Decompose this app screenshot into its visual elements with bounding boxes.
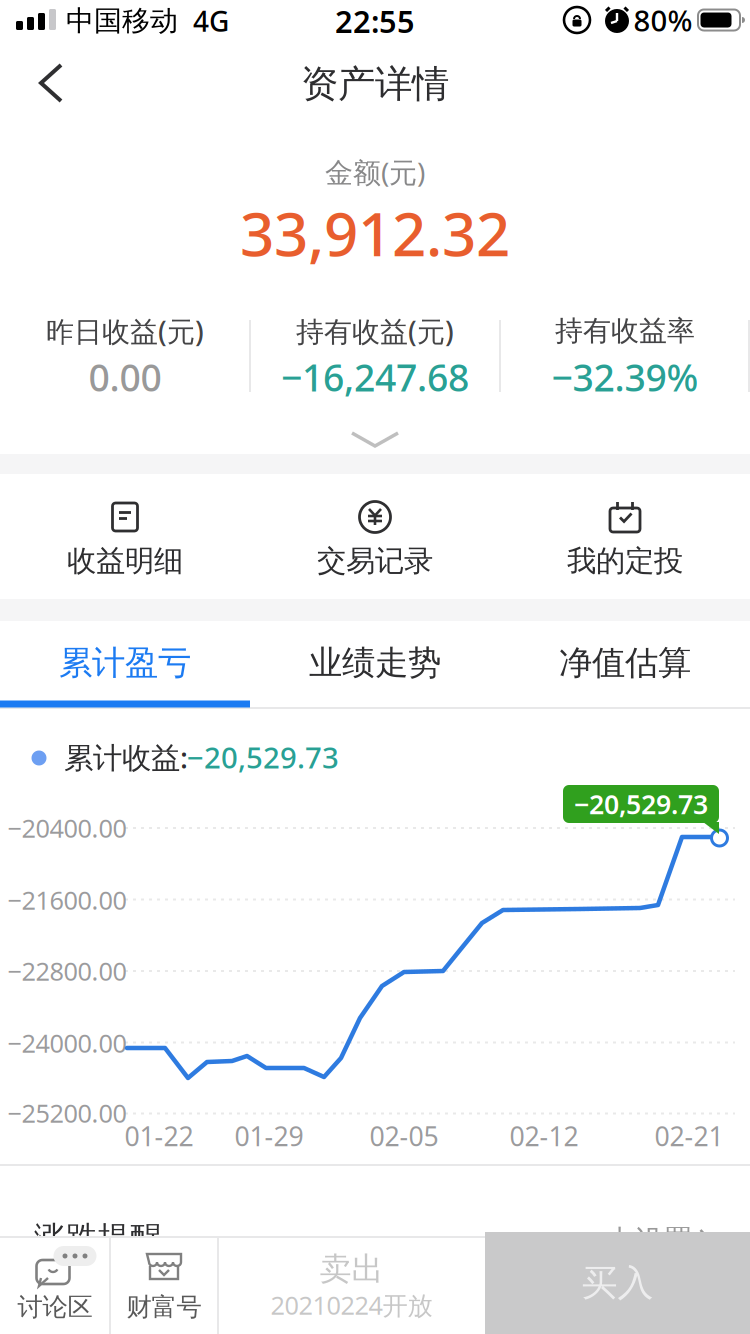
staticText: 0.00: [88, 352, 161, 402]
staticText: 02-05: [369, 1118, 438, 1154]
staticText: 02-21: [654, 1118, 723, 1154]
staticText: 交易记录: [317, 543, 433, 579]
button[interactable]: 交易记录: [260, 477, 490, 597]
staticText: 持有收益(元): [296, 312, 454, 350]
button[interactable]: 收益明细: [10, 477, 240, 597]
staticText: 01-22: [124, 1118, 193, 1154]
staticText: 收益明细: [67, 543, 183, 579]
staticText: 资产详情: [301, 61, 449, 107]
button[interactable]: 财富号: [110, 1237, 218, 1334]
button[interactable]: 我的定投: [510, 477, 740, 597]
staticText: 涨跌提醒: [34, 1218, 162, 1258]
staticText: 80%: [633, 0, 692, 39]
button[interactable]: 买入: [485, 1232, 750, 1334]
staticText: 金额(元): [325, 153, 425, 191]
staticText: 20210224开放: [270, 1288, 432, 1322]
staticText: −20400.00: [7, 811, 126, 845]
staticText: 33,912.32: [240, 193, 510, 273]
staticText: 中国移动: [66, 4, 178, 38]
staticText: 22:55: [335, 1, 415, 41]
staticText: −16,247.68: [281, 352, 469, 402]
staticText: 昨日收益(元): [46, 312, 204, 350]
staticText: −20,529.73: [187, 737, 339, 776]
staticText: −20,529.73: [574, 786, 708, 822]
staticText: 02-12: [509, 1118, 578, 1154]
staticText: 累计收益:: [64, 737, 188, 776]
staticText: −25200.00: [7, 1096, 126, 1130]
staticText: 净值估算: [559, 642, 691, 683]
staticText: 持有收益率: [555, 314, 695, 348]
staticText: 业绩走势: [309, 642, 441, 683]
staticText: 财富号: [126, 1291, 201, 1322]
staticText: 卖出: [319, 1249, 383, 1289]
button[interactable]: 净值估算: [500, 620, 750, 706]
staticText: −21600.00: [7, 883, 126, 917]
staticText: −24000.00: [7, 1026, 126, 1060]
button[interactable]: 业绩走势: [250, 620, 500, 706]
button[interactable]: 去设置: [605, 1223, 710, 1259]
staticText: 4G: [193, 2, 229, 40]
button[interactable]: 卖出: [218, 1237, 485, 1334]
staticText: −32.39%: [551, 352, 698, 402]
staticText: 买入: [581, 1261, 653, 1305]
staticText: 我的定投: [567, 543, 683, 579]
button[interactable]: Back: [12, 48, 92, 118]
staticText: 累计盈亏: [59, 642, 191, 683]
staticText: 去设置: [605, 1223, 692, 1259]
button[interactable]: 累计盈亏: [0, 620, 250, 706]
button[interactable]: 讨论区: [0, 1237, 110, 1334]
staticText: −22800.00: [7, 954, 126, 988]
staticText: 讨论区: [17, 1291, 92, 1322]
staticText: 01-29: [234, 1118, 303, 1154]
